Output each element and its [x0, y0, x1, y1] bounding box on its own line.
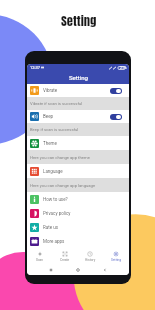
staticText: Beep [43, 114, 54, 119]
staticText: Vibrate if scan is successful [30, 101, 83, 106]
staticText: 21% [120, 66, 127, 70]
button[interactable]: Recents [48, 267, 54, 273]
staticText: Create [60, 258, 70, 262]
button[interactable]: Back [102, 267, 108, 273]
staticText: Setting [61, 11, 97, 30]
button[interactable]: More apps [27, 234, 129, 248]
button[interactable]: History [77, 248, 103, 264]
button[interactable]: Create [52, 248, 77, 264]
button[interactable]: Theme [27, 136, 129, 150]
button[interactable]: Vibrate [27, 84, 129, 97]
staticText: Rate us [43, 225, 58, 230]
staticText: Here you can change app language [30, 183, 96, 188]
button[interactable]: Rate us [27, 220, 129, 234]
button[interactable]: Setting [103, 248, 129, 264]
button[interactable]: Language [27, 164, 129, 178]
staticText: 12:37 [30, 65, 40, 70]
button[interactable]: Scan [27, 248, 52, 264]
button[interactable]: Home [75, 267, 81, 273]
staticText: Theme [43, 141, 57, 146]
staticText: How to use? [43, 197, 68, 202]
staticText: Privacy policy [43, 211, 71, 216]
staticText: Scan [36, 258, 44, 262]
staticText: Here you can change app theme [30, 155, 90, 160]
button[interactable]: Toggle Beep [110, 114, 122, 120]
button[interactable]: How to use? [27, 192, 129, 206]
staticText: More apps [43, 239, 65, 244]
staticText: Language [43, 169, 63, 174]
button[interactable]: Beep [27, 110, 129, 123]
staticText: History [85, 258, 96, 262]
staticText: Setting [111, 258, 121, 262]
staticText: Setting [69, 74, 88, 81]
staticText: Vibrate [43, 88, 58, 93]
button[interactable]: Toggle Vibrate [110, 88, 122, 94]
staticText: Beep if scan is successful [30, 127, 79, 132]
button[interactable]: Privacy policy [27, 206, 129, 220]
